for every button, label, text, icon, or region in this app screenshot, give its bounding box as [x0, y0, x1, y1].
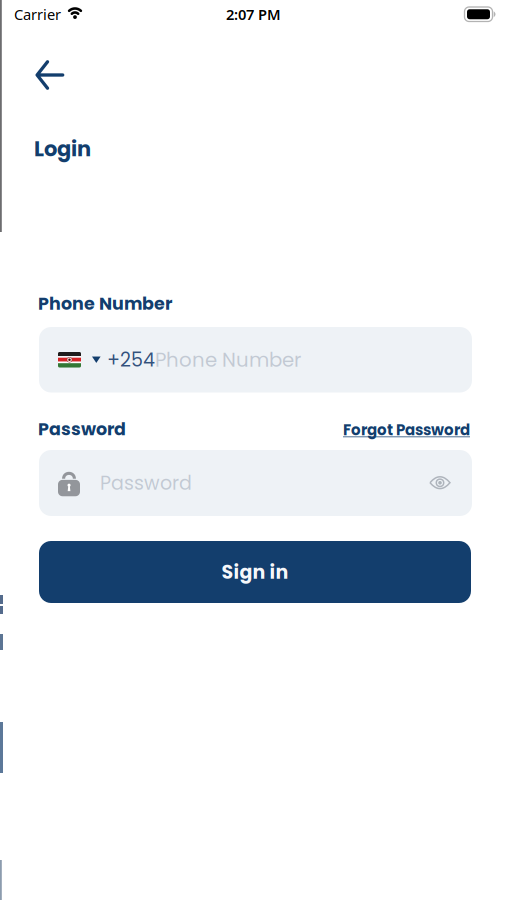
staticText: Carrier — [14, 4, 61, 24]
staticText: Phone Number — [38, 291, 172, 316]
staticText: Sign in — [221, 559, 288, 585]
staticText: 2:07 PM — [226, 4, 281, 24]
button[interactable]: Select country code — [58, 352, 101, 367]
button[interactable]: Show password — [429, 475, 451, 490]
button[interactable]: Phone Number — [39, 327, 472, 392]
staticText: Password — [38, 417, 126, 441]
staticText: Forgot Password — [343, 420, 470, 441]
staticText: +254 — [107, 346, 155, 373]
staticText: Login — [34, 134, 91, 164]
staticText: Password — [100, 470, 192, 496]
button[interactable]: Password — [39, 450, 472, 516]
staticText: Phone Number — [155, 346, 301, 373]
button[interactable]: Back — [29, 54, 71, 96]
button[interactable]: Sign in — [39, 541, 471, 603]
button[interactable]: Forgot Password — [343, 420, 470, 441]
